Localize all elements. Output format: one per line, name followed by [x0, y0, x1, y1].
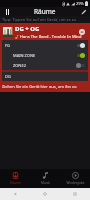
button[interactable]: DG + OG: [0, 23, 90, 40]
staticText: ZONE2: [13, 63, 26, 68]
button[interactable]: FG: [2, 40, 88, 50]
button[interactable]: Toggle ZONE2: [76, 62, 85, 69]
staticText: Musik: [41, 181, 50, 185]
staticText: DG + OG: [15, 25, 40, 33]
button[interactable]: Räume: [0, 169, 30, 188]
button[interactable]: Back: [0, 188, 30, 200]
button[interactable]: Recents: [60, 188, 90, 200]
staticText: DG: [5, 74, 11, 79]
button[interactable]: Home: [30, 188, 60, 200]
button[interactable]: Musik: [30, 169, 60, 188]
button[interactable]: Wiedergabe: [60, 169, 90, 188]
staticText: Ziehen Sie ein Gerät hier aus, um ihn zu…: [2, 84, 88, 89]
staticText: Räume: [10, 181, 21, 185]
staticText: 29%: [76, 1, 84, 6]
button[interactable]: Pause: [3, 7, 12, 16]
staticText: Räume: [34, 7, 56, 16]
button[interactable]: Edit: [79, 7, 88, 16]
button[interactable]: Toggle MAIN ZONE: [76, 52, 85, 59]
button[interactable]: Toggle FG: [76, 42, 85, 49]
button[interactable]: ZONE2: [2, 60, 88, 70]
button[interactable]: DG: [2, 72, 88, 81]
staticText: FG: [5, 43, 10, 48]
staticText: Wiedergabe: [66, 181, 85, 185]
staticText: MAIN ZONE: [13, 53, 36, 58]
staticText: Tipp: Tippen Sie auf ein Gerät, um es zu…: [2, 17, 88, 22]
button[interactable]: Remove group: [78, 28, 86, 36]
staticText: Hans The Band - Trouble In Mind: [20, 34, 82, 39]
button[interactable]: MAIN ZONE: [2, 50, 88, 60]
